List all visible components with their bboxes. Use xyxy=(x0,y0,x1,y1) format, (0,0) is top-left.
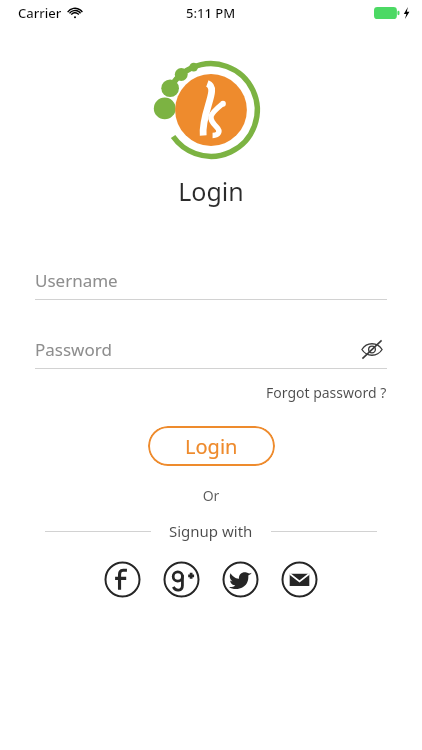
staticText: 5:11 PM xyxy=(186,4,236,22)
button[interactable]: Show password xyxy=(357,334,387,364)
button[interactable]: Password xyxy=(35,334,387,364)
staticText: Login xyxy=(185,433,238,460)
button[interactable]: Login xyxy=(148,426,275,466)
staticText: Username xyxy=(35,269,118,292)
staticText: Login xyxy=(0,174,422,208)
button[interactable]: Sign up with Twitter xyxy=(222,561,259,598)
button[interactable]: Sign up with Google Plus xyxy=(163,561,200,598)
staticText: Forgot password ? xyxy=(266,383,387,402)
button[interactable]: Sign up with Email xyxy=(281,561,318,598)
staticText: Password xyxy=(35,338,112,361)
staticText: Signup with xyxy=(169,521,253,541)
button[interactable]: Sign up with Facebook xyxy=(104,561,141,598)
staticText: Carrier xyxy=(18,4,62,22)
button[interactable]: Username xyxy=(35,265,387,295)
button[interactable]: Forgot password ? xyxy=(266,381,387,404)
staticText: Or xyxy=(0,486,422,505)
